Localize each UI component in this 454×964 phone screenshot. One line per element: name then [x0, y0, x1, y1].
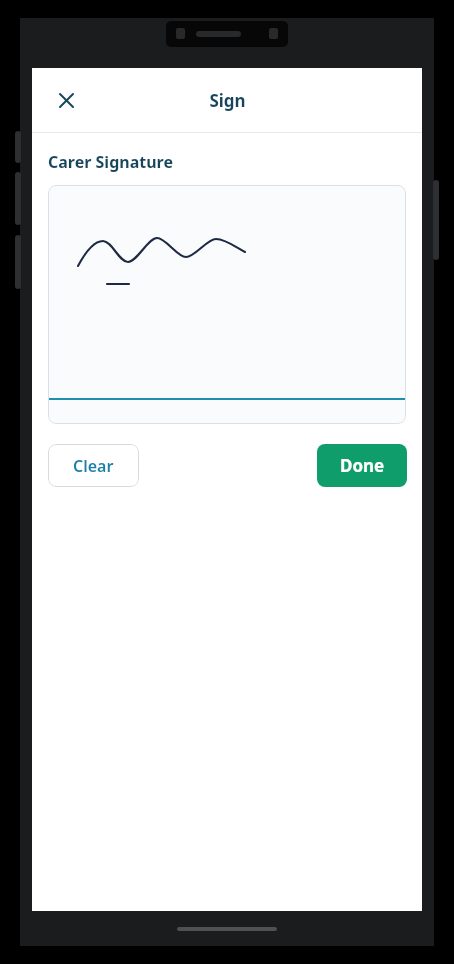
staticText: Carer Signature	[48, 151, 173, 173]
staticText: Clear	[73, 455, 114, 477]
button[interactable]: Done	[317, 444, 407, 487]
button[interactable]	[50, 84, 82, 116]
staticText: Sign	[209, 89, 246, 112]
staticText: Done	[340, 454, 385, 477]
button[interactable]: Clear	[48, 444, 139, 487]
